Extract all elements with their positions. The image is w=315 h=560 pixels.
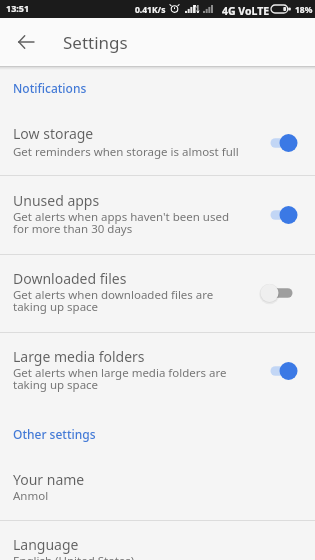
staticText: Large media folders — [13, 347, 145, 366]
staticText: 4G VoLTE — [222, 4, 270, 18]
staticText: 13:51 — [6, 2, 30, 14]
button[interactable]: Turn off — [261, 204, 299, 226]
staticText: Get alerts when large media folders are — [13, 365, 227, 381]
staticText: Downloaded files — [13, 269, 127, 288]
staticText: Your name — [13, 470, 85, 489]
button[interactable]: Unused apps — [0, 176, 315, 254]
staticText: 0.41K/s — [135, 4, 166, 16]
staticText: taking up space — [13, 299, 99, 315]
staticText: Unused apps — [13, 191, 100, 210]
button[interactable]: Turn off — [261, 360, 299, 382]
button[interactable]: Turn off — [261, 132, 299, 154]
staticText: Low storage — [13, 124, 94, 143]
button[interactable]: Language — [0, 521, 315, 560]
staticText: taking up space — [13, 377, 99, 393]
staticText: Notifications — [13, 80, 87, 96]
staticText: Language — [13, 535, 79, 554]
staticText: Settings — [63, 31, 128, 54]
button[interactable]: Back — [6, 22, 46, 62]
staticText: for more than 30 days — [13, 221, 133, 237]
staticText: Get alerts when apps haven't been used — [13, 209, 230, 225]
button[interactable]: Your name — [0, 458, 315, 520]
staticText: Anmol — [13, 488, 49, 504]
staticText: Other settings — [13, 426, 96, 442]
button[interactable]: Turn on — [261, 282, 299, 304]
staticText: English (United States) — [13, 553, 135, 560]
staticText: 18% — [295, 4, 313, 16]
staticText: Get reminders when storage is almost ful… — [13, 144, 239, 160]
button[interactable]: Downloaded files — [0, 255, 315, 332]
button[interactable]: Low storage — [0, 113, 315, 175]
staticText: Get alerts when downloaded files are — [13, 287, 214, 303]
button[interactable]: Large media folders — [0, 333, 315, 410]
